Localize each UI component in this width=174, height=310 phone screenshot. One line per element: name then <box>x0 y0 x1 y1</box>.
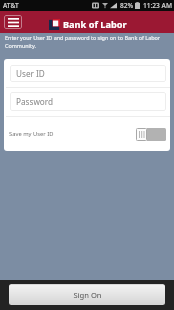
staticText: Password <box>16 96 54 107</box>
staticText: 82% <box>120 1 134 10</box>
staticText: Sign On <box>73 290 102 300</box>
button[interactable]: Save my User ID toggle <box>136 128 166 141</box>
staticText: User ID <box>16 68 45 79</box>
button[interactable]: User ID <box>10 65 166 82</box>
staticText: Save my User ID <box>9 130 54 138</box>
button[interactable]: Menu <box>4 15 22 29</box>
button[interactable]: Save my User ID <box>4 117 170 151</box>
staticText: Bank of Labor <box>63 18 127 31</box>
staticText: AT&T <box>3 1 19 10</box>
button[interactable]: Password <box>10 92 166 111</box>
staticText: 11:23 AM <box>143 1 172 10</box>
staticText: Enter your User ID and password to sign … <box>5 34 169 50</box>
button[interactable]: Sign On <box>9 284 165 305</box>
